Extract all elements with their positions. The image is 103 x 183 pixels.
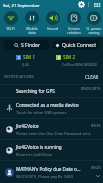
staticText: U. power saving bbox=[86, 26, 102, 35]
staticText: 1 bbox=[18, 56, 20, 60]
button[interactable]: Mobile data bbox=[21, 11, 42, 35]
staticText: S Finder bbox=[21, 42, 40, 49]
staticText: Touch for other USB options bbox=[16, 110, 67, 115]
button[interactable]: Screen rotation bbox=[63, 11, 84, 35]
staticText: 09:20 bbox=[91, 165, 101, 170]
button[interactable]: CLEAR bbox=[85, 74, 99, 80]
staticText: Jio4GVoice is running bbox=[16, 144, 62, 150]
button[interactable]: Edit quick settings bbox=[91, 0, 100, 9]
button[interactable]: Settings bbox=[77, 0, 86, 9]
button[interactable]: 1 bbox=[0, 52, 51, 70]
staticText: Please enter the One-Time Password sent. bbox=[16, 131, 92, 136]
staticText: NOTIFICATIONS bbox=[4, 74, 34, 79]
button[interactable]: Searching for GPS bbox=[0, 85, 103, 97]
staticText: 09:09 2019 bbox=[81, 86, 101, 91]
button[interactable]: S Finder bbox=[3, 40, 50, 50]
button[interactable]: Jio4GVoice is running bbox=[0, 140, 103, 160]
button[interactable]: MATHAN's Policy due Date o... bbox=[0, 161, 103, 183]
staticText: CLEAR bbox=[85, 74, 99, 80]
staticText: Quick Connect bbox=[62, 42, 97, 49]
staticText: 08/21/2019, Please pay Rs. 5823 bbox=[16, 174, 73, 179]
button[interactable]: 2 bbox=[51, 52, 103, 70]
staticText: Searching for GPS bbox=[16, 88, 55, 94]
staticText: Screen rotation bbox=[67, 26, 81, 35]
staticText: MATHAN's Policy due Date o... bbox=[16, 166, 81, 172]
staticText: CellOne (BSNL MOBILE) bbox=[62, 63, 98, 67]
button[interactable]: Connected as a media device bbox=[0, 98, 103, 118]
staticText: Sat, 21 September bbox=[3, 2, 40, 8]
staticText: SIM 1 bbox=[23, 54, 36, 60]
staticText: 09:35 bbox=[91, 123, 101, 128]
staticText: SIM 2 bbox=[63, 54, 76, 60]
button[interactable]: Wi-Fi bbox=[0, 11, 21, 31]
button[interactable]: U. power saving bbox=[84, 11, 103, 35]
staticText: Mobile data bbox=[26, 26, 38, 35]
button[interactable]: Jio4GVoice bbox=[0, 119, 103, 139]
staticText: Return to Jio4GVoice bbox=[16, 152, 53, 157]
staticText: JI-4G bbox=[22, 63, 30, 67]
staticText: Wi-Fi bbox=[6, 26, 15, 31]
button[interactable]: Sound bbox=[42, 11, 63, 31]
staticText: Jio4GVoice bbox=[16, 123, 39, 129]
staticText: Connected as a media device bbox=[16, 102, 79, 108]
staticText: 2 bbox=[58, 56, 60, 60]
staticText: Sound bbox=[47, 26, 58, 31]
button[interactable]: Quick Connect bbox=[52, 40, 100, 50]
